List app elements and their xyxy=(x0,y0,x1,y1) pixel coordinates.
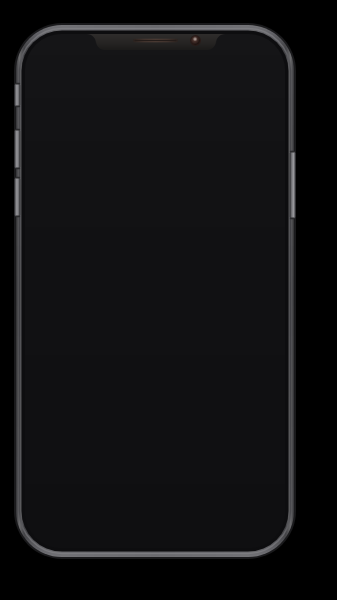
button[interactable]: Phone device mockup with dark screen xyxy=(0,0,337,600)
